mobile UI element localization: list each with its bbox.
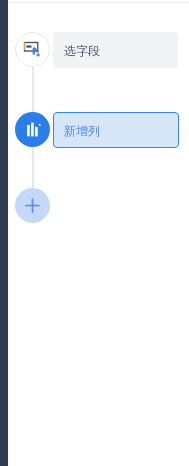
button[interactable]: Add step — [15, 188, 50, 223]
staticText: 选字段 — [64, 43, 100, 58]
button[interactable]: Add column — [15, 112, 50, 147]
button[interactable]: 选字段 — [53, 32, 178, 68]
staticText: 新增列 — [64, 123, 100, 138]
button[interactable]: Select field — [15, 32, 50, 67]
button[interactable]: 新增列 — [53, 112, 179, 148]
